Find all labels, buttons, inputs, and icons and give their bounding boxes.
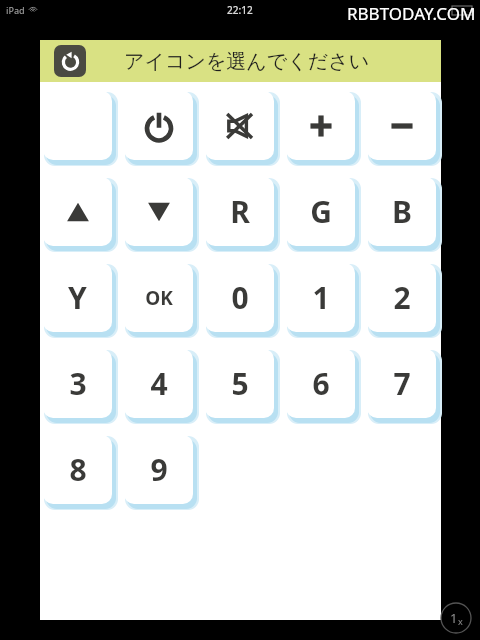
staticText: 22:12: [227, 3, 253, 17]
staticText: 0: [231, 277, 249, 318]
staticText: 9: [150, 449, 168, 490]
staticText: 4: [150, 363, 168, 404]
button[interactable]: 2: [367, 263, 441, 337]
button[interactable]: Power: [124, 91, 205, 165]
button[interactable]: 1: [286, 263, 367, 337]
button[interactable]: Mute: [205, 91, 286, 165]
button[interactable]: 5: [205, 349, 286, 423]
staticText: 8: [69, 449, 87, 490]
button[interactable]: Scale 1x: [440, 602, 472, 634]
staticText: 3: [69, 363, 87, 404]
staticText: 1: [450, 609, 458, 627]
staticText: 1: [312, 277, 330, 318]
button[interactable]: 9: [124, 435, 205, 509]
button[interactable]: 7: [367, 349, 441, 423]
staticText: 2: [393, 277, 411, 318]
staticText: 5: [231, 363, 249, 404]
button[interactable]: Reload: [54, 45, 86, 77]
button[interactable]: Volume up: [286, 91, 367, 165]
button[interactable]: 0: [205, 263, 286, 337]
staticText: x: [458, 615, 463, 627]
button[interactable]: B: [367, 177, 441, 251]
button[interactable]: 4: [124, 349, 205, 423]
staticText: 7: [393, 363, 411, 404]
button[interactable]: G: [286, 177, 367, 251]
staticText: 6: [312, 363, 330, 404]
button[interactable]: 3: [43, 349, 124, 423]
button[interactable]: Channel up: [43, 177, 124, 251]
button[interactable]: OK: [124, 263, 205, 337]
staticText: アイコンを選んでください: [124, 49, 370, 74]
button[interactable]: Y: [43, 263, 124, 337]
staticText: iPad: [6, 4, 25, 16]
button[interactable]: Volume down: [367, 91, 441, 165]
staticText: Y: [68, 277, 87, 318]
staticText: B: [392, 191, 412, 232]
staticText: R: [230, 191, 250, 232]
button[interactable]: R: [205, 177, 286, 251]
staticText: G: [310, 191, 332, 232]
staticText: OK: [145, 285, 173, 311]
button[interactable]: Channel down: [124, 177, 205, 251]
button[interactable]: 8: [43, 435, 124, 509]
button[interactable]: 6: [286, 349, 367, 423]
button[interactable]: Empty: [43, 91, 124, 165]
staticText: RBBTODAY.COM: [347, 2, 476, 25]
